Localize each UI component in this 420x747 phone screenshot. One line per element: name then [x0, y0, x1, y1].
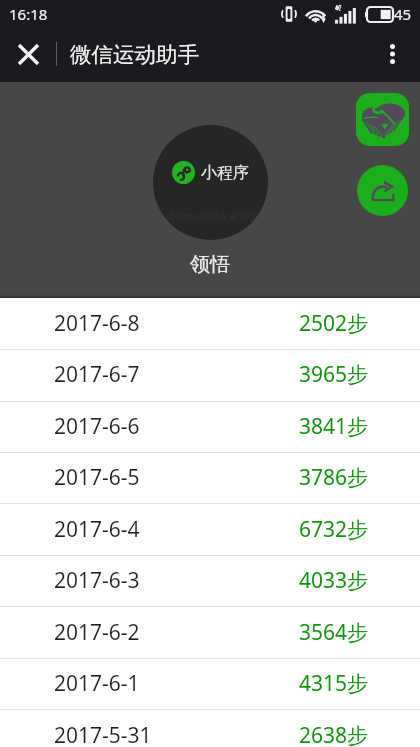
button[interactable]: Share: [357, 165, 408, 216]
staticText: 2017-6-6: [54, 412, 140, 441]
button[interactable]: 2017-5-31: [0, 710, 420, 747]
staticText: 领悟: [190, 252, 230, 277]
staticText: 4033步: [299, 566, 369, 595]
staticText: 微信运动助手: [70, 41, 199, 68]
button[interactable]: 2017-6-7: [0, 349, 420, 400]
button[interactable]: Close: [8, 34, 48, 74]
button[interactable]: 2017-6-4: [0, 504, 420, 555]
staticText: 2017-6-7: [54, 360, 140, 389]
staticText: 请将微信更新至最新版: [166, 211, 256, 222]
staticText: 16:18: [9, 4, 48, 24]
staticText: 2017-5-31: [54, 721, 152, 747]
staticText: 小程序: [201, 163, 249, 183]
staticText: 4315步: [299, 669, 369, 698]
button[interactable]: 2017-6-3: [0, 555, 420, 606]
staticText: 6732步: [299, 515, 369, 544]
button[interactable]: More options: [372, 34, 412, 74]
button[interactable]: 2017-6-2: [0, 607, 420, 658]
staticText: 45: [394, 4, 412, 24]
button[interactable]: 小程序: [153, 125, 268, 240]
staticText: 3564步: [299, 618, 369, 647]
button[interactable]: 2017-6-6: [0, 401, 420, 452]
button[interactable]: 2017-6-5: [0, 452, 420, 503]
button[interactable]: 2017-6-1: [0, 658, 420, 709]
staticText: 2017-6-1: [54, 669, 140, 698]
staticText: 2017-6-4: [54, 515, 140, 544]
staticText: 3841步: [299, 412, 369, 441]
staticText: 3786步: [299, 463, 369, 492]
staticText: 2017-6-5: [54, 463, 140, 492]
staticText: 2017-6-8: [54, 309, 140, 338]
button[interactable]: Friends ranking: [356, 93, 409, 146]
staticText: 2502步: [299, 309, 369, 338]
button[interactable]: 2017-6-8: [0, 298, 420, 349]
staticText: 2017-6-3: [54, 566, 140, 595]
staticText: 2638步: [299, 721, 369, 747]
staticText: 3965步: [299, 360, 369, 389]
staticText: 2017-6-2: [54, 618, 140, 647]
